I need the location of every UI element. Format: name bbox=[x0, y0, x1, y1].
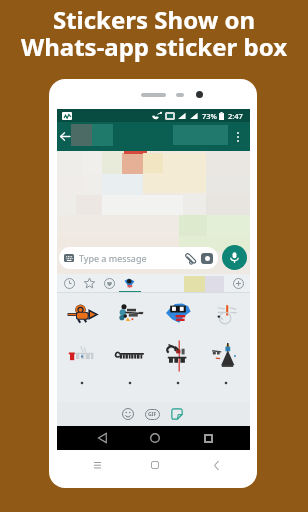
button[interactable]: Menu bbox=[87, 457, 107, 473]
button[interactable]: Sticker 4 bbox=[202, 293, 250, 335]
button[interactable]: Back bbox=[206, 457, 226, 473]
button[interactable]: Sticker 1 bbox=[57, 293, 106, 335]
button[interactable]: Sticker 5 bbox=[57, 335, 106, 377]
button[interactable]: Emoji bbox=[118, 402, 138, 426]
staticText: Type a message bbox=[79, 252, 147, 264]
staticText: 2:47 bbox=[228, 111, 243, 121]
button[interactable]: Starred stickers bbox=[79, 274, 99, 293]
staticText: Stickers Show on Whats-app sticker box bbox=[0, 3, 308, 63]
button[interactable]: Sticker 3 bbox=[154, 293, 202, 335]
button[interactable]: Home bbox=[143, 426, 167, 450]
button[interactable]: More options bbox=[232, 122, 243, 151]
button[interactable]: Sticker pack bbox=[119, 274, 139, 293]
button[interactable]: Sticker 11 bbox=[154, 377, 202, 402]
button[interactable]: Recent apps bbox=[196, 426, 220, 450]
button[interactable]: Back bbox=[90, 426, 114, 450]
button[interactable]: Favourite stickers bbox=[99, 274, 119, 293]
staticText: 73% bbox=[202, 111, 217, 121]
button[interactable]: Sticker 8 bbox=[202, 335, 250, 377]
button[interactable]: Sticker 2 bbox=[106, 293, 154, 335]
button[interactable]: Recent stickers bbox=[59, 274, 79, 293]
button[interactable]: GIF bbox=[142, 402, 162, 426]
button[interactable]: Sticker 12 bbox=[202, 377, 250, 402]
button[interactable]: Home bbox=[145, 457, 165, 473]
button[interactable]: Camera bbox=[201, 253, 213, 264]
button[interactable]: Back bbox=[58, 129, 72, 144]
button[interactable]: Sticker 10 bbox=[106, 377, 154, 402]
staticText: GIF bbox=[148, 411, 157, 418]
button[interactable]: Type a message bbox=[59, 247, 218, 269]
button[interactable]: Add sticker pack bbox=[228, 274, 248, 293]
button[interactable]: Stickers bbox=[167, 402, 187, 426]
button[interactable]: Voice message bbox=[222, 245, 247, 270]
button[interactable]: Sticker 6 bbox=[106, 335, 154, 377]
button[interactable]: Sticker 7 bbox=[154, 335, 202, 377]
button[interactable]: Sticker 9 bbox=[57, 377, 106, 402]
button[interactable]: Attach bbox=[184, 252, 197, 265]
